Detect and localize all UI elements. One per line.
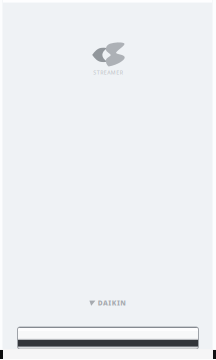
staticText: STREAMER — [93, 69, 123, 76]
staticText: DAIKIN — [98, 299, 126, 307]
